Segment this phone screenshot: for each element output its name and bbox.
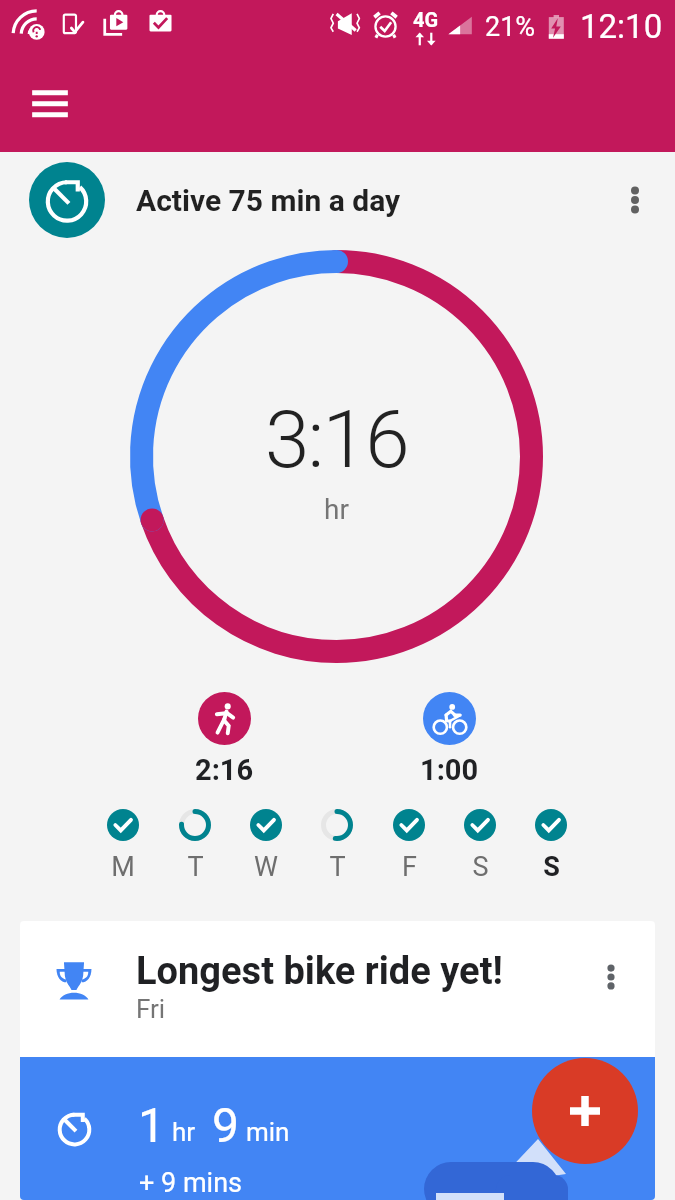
staticText: M — [111, 851, 135, 883]
staticText: 3:16 — [265, 393, 408, 487]
button[interactable]: Longest bike ride yet! — [20, 921, 655, 1057]
button[interactable]: T — [312, 809, 362, 883]
staticText: F — [402, 851, 417, 883]
staticText: W — [254, 851, 278, 883]
staticText: Longest bike ride yet! — [136, 949, 503, 994]
button[interactable]: Open navigation menu — [18, 70, 82, 134]
staticText: 12:10 — [580, 7, 663, 46]
staticText: hr — [172, 1117, 196, 1147]
staticText: T — [187, 851, 204, 883]
staticText: 1:00 — [420, 753, 479, 787]
staticText: 9 — [212, 1097, 239, 1153]
staticText: Fri — [136, 994, 166, 1024]
button[interactable]: Add activity — [532, 1058, 638, 1164]
button[interactable]: S — [455, 809, 505, 883]
staticText: + 9 mins — [139, 1167, 242, 1199]
staticText: min — [246, 1117, 290, 1147]
staticText: hr — [324, 493, 349, 526]
button[interactable]: W — [241, 809, 291, 883]
button[interactable]: T — [170, 809, 220, 883]
staticText: 1 — [138, 1097, 165, 1153]
staticText: S — [543, 851, 560, 883]
button[interactable]: 1:00 — [389, 692, 509, 787]
staticText: S — [472, 851, 489, 883]
button[interactable]: Achievement options — [585, 951, 637, 1003]
button[interactable]: 2:16 — [164, 692, 284, 787]
staticText: T — [329, 851, 346, 883]
button[interactable]: F — [384, 809, 434, 883]
button[interactable]: More options — [605, 170, 665, 230]
staticText: Active 75 min a day — [136, 183, 401, 218]
staticText: 4G — [413, 8, 439, 31]
button[interactable]: M — [98, 809, 148, 883]
staticText: 2:16 — [195, 753, 254, 787]
staticText: 21% — [485, 11, 536, 43]
button[interactable]: S — [526, 809, 576, 883]
